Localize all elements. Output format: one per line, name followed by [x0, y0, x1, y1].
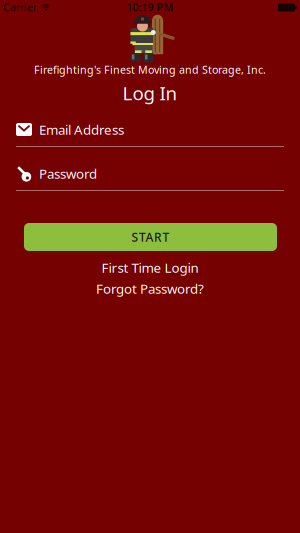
- button[interactable]: Forgot Password?: [96, 278, 204, 299]
- staticText: Email Address: [39, 121, 124, 138]
- staticText: First Time Login: [101, 259, 198, 276]
- staticText: START: [131, 229, 169, 245]
- staticText: Carrier: [3, 0, 37, 14]
- staticText: Forgot Password?: [96, 280, 204, 297]
- button[interactable]: Password: [16, 161, 284, 185]
- button[interactable]: START: [24, 223, 277, 251]
- staticText: Log In: [122, 81, 177, 105]
- staticText: 10:19 PM: [126, 0, 173, 14]
- staticText: Password: [39, 165, 97, 182]
- button[interactable]: First Time Login: [101, 257, 198, 278]
- button[interactable]: Email Address: [16, 117, 284, 141]
- staticText: Firefighting's Finest Moving and Storage…: [34, 62, 266, 77]
